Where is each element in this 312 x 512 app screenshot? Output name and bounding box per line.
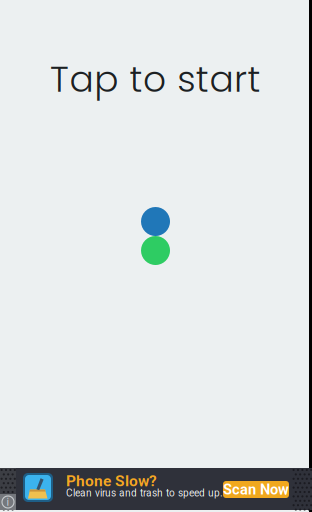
staticText: Scan Now (223, 481, 289, 498)
button[interactable]: Ad information (0, 468, 16, 510)
button[interactable]: Start (141, 207, 170, 265)
staticText: i (6, 496, 9, 508)
staticText: Phone Slow? (66, 472, 157, 490)
staticText: Tap to start (50, 54, 261, 104)
staticText: Clean virus and trash to speed up. (66, 487, 223, 499)
button[interactable]: Scan Now (223, 481, 289, 498)
